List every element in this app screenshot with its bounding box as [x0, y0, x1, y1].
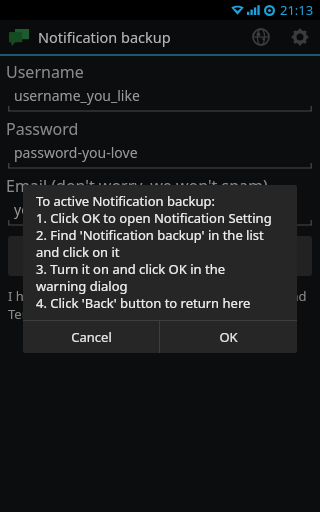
staticText: Register	[133, 247, 188, 266]
staticText: Cancel	[71, 328, 112, 346]
staticText: username_you_like	[14, 86, 140, 105]
staticText: Password	[6, 118, 79, 140]
button[interactable]: Cancel	[23, 321, 159, 353]
button[interactable]: Language	[242, 20, 280, 54]
staticText: I have read and agree with the Privacy P…	[8, 287, 307, 323]
staticText: Notification backup	[38, 27, 171, 47]
staticText: password-you-love	[14, 143, 138, 162]
staticText: 21:13	[280, 1, 314, 19]
button[interactable]: Settings	[280, 20, 320, 54]
button[interactable]: Register	[8, 236, 312, 276]
button[interactable]: Notification backup app icon	[9, 29, 29, 46]
staticText: your_mail@mail.com	[14, 200, 152, 219]
staticText: Email (don't worry, we won't spam)	[6, 175, 268, 197]
button[interactable]: OK	[160, 321, 297, 353]
staticText: Username	[6, 61, 84, 83]
staticText: OK	[219, 328, 238, 346]
staticText: To active Notification backup: 1. Click …	[36, 192, 272, 312]
